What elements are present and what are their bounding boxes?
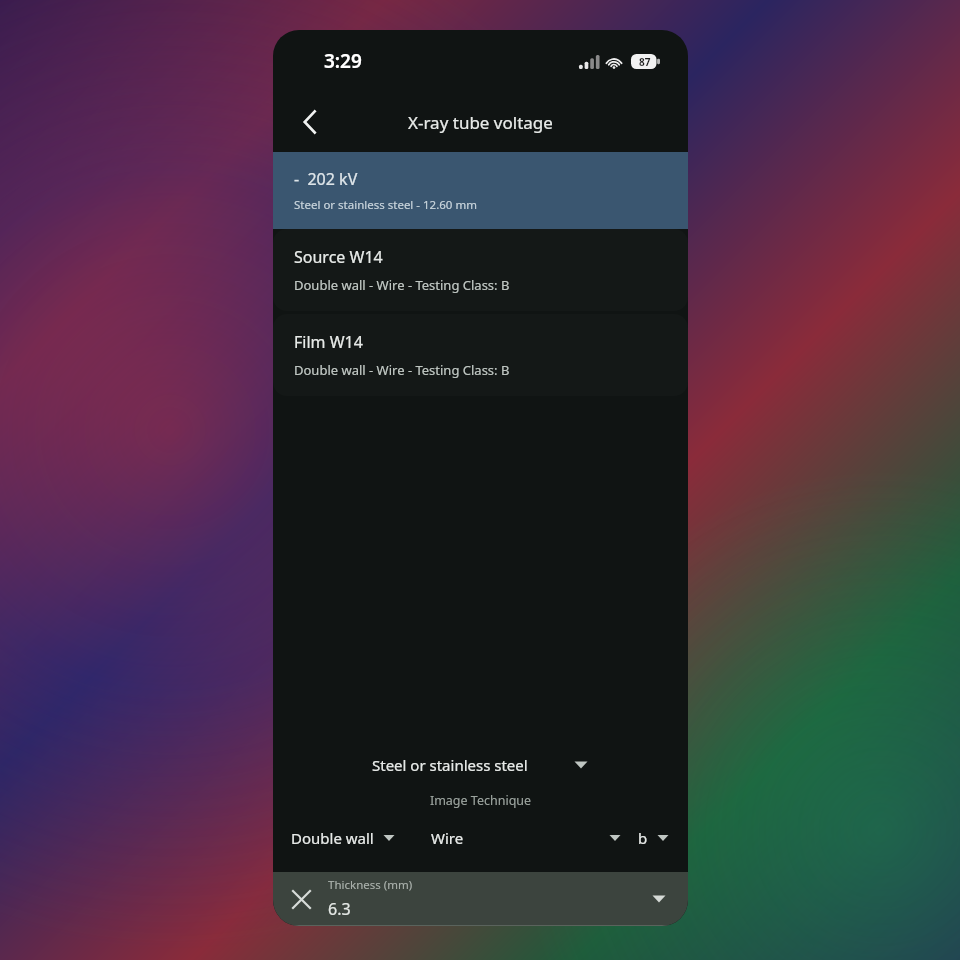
staticText: Double wall - Wire - Testing Class: B xyxy=(294,361,510,379)
staticText: Steel or stainless steel - 12.60 mm xyxy=(294,197,477,213)
staticText: Source W14 xyxy=(294,246,383,268)
staticText: Thickness (mm) xyxy=(328,877,413,893)
staticText: Image Technique xyxy=(273,792,688,809)
staticText: b xyxy=(638,828,648,848)
button[interactable]: Steel or stainless steel xyxy=(273,746,688,784)
button[interactable]: Back xyxy=(287,99,333,145)
staticText: Double wall xyxy=(291,828,374,848)
button[interactable]: - 202 kV xyxy=(273,152,688,229)
button[interactable]: Film W14 xyxy=(273,314,688,396)
staticText: Steel or stainless steel xyxy=(372,755,528,775)
staticText: 87 xyxy=(639,55,651,69)
button[interactable]: b xyxy=(638,822,672,854)
staticText: Film W14 xyxy=(294,331,363,353)
staticText: Double wall - Wire - Testing Class: B xyxy=(294,276,510,294)
staticText: X-ray tube voltage xyxy=(408,111,553,134)
button[interactable]: Wire xyxy=(431,822,624,854)
staticText: - 202 kV xyxy=(294,168,358,190)
button[interactable]: Clear xyxy=(273,872,688,925)
button[interactable]: Double wall xyxy=(291,822,398,854)
staticText: 6.3 xyxy=(328,898,351,920)
staticText: Wire xyxy=(431,828,464,848)
staticText: 3:29 xyxy=(324,48,362,74)
button[interactable]: Clear xyxy=(281,879,321,919)
button[interactable]: Source W14 xyxy=(273,229,688,311)
